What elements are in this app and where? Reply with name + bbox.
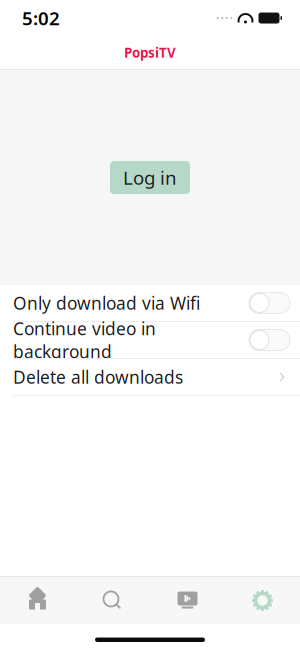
staticText: PopsiTV (124, 44, 176, 61)
staticText: Continue video in background (13, 317, 156, 363)
button[interactable]: Search (75, 577, 150, 624)
button[interactable]: Delete all downloads (0, 359, 300, 395)
staticText: 5:02 (22, 6, 60, 30)
staticText: Log in (123, 165, 177, 190)
button[interactable]: Log in (110, 161, 190, 194)
button[interactable]: Videos (150, 577, 225, 624)
button[interactable]: Settings (225, 577, 300, 624)
button[interactable]: Continue video in background (0, 322, 300, 358)
staticText: Delete all downloads (13, 365, 183, 388)
button[interactable]: Home (0, 577, 75, 624)
staticText: Only download via Wifi (13, 291, 200, 314)
button[interactable]: Only download via Wifi (0, 285, 300, 321)
